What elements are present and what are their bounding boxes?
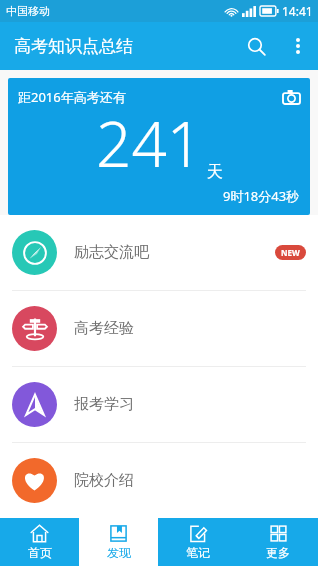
staticText: 笔记 [186, 545, 210, 560]
button[interactable]: 高考经验 [0, 291, 318, 366]
staticText: 发现 [107, 545, 131, 560]
button[interactable]: 笔记 [158, 518, 238, 566]
button[interactable]: Camera [278, 84, 304, 110]
button[interactable]: 励志交流吧 [0, 215, 318, 290]
staticText: 14:41 [282, 3, 313, 19]
staticText: NEW [281, 247, 300, 258]
staticText: 高考经验 [74, 319, 134, 338]
staticText: 中国移动 [6, 4, 50, 18]
staticText: 9时18分43秒 [223, 187, 300, 205]
button[interactable]: More options [278, 26, 318, 66]
button[interactable]: 院校介绍 [0, 443, 318, 518]
button[interactable]: 首页 [0, 518, 79, 566]
button[interactable]: 发现 [79, 518, 158, 566]
staticText: 距2016年高考还有 [18, 88, 126, 106]
staticText: 励志交流吧 [74, 243, 149, 262]
staticText: 院校介绍 [74, 471, 134, 490]
staticText: 更多 [266, 545, 290, 560]
staticText: 报考学习 [74, 395, 134, 414]
staticText: 天 [207, 162, 223, 182]
staticText: 241 [96, 101, 203, 185]
button[interactable]: 报考学习 [0, 367, 318, 442]
staticText: 高考知识点总结 [14, 36, 133, 57]
button[interactable]: 更多 [238, 518, 318, 566]
button[interactable]: Search [234, 24, 278, 68]
staticText: 首页 [28, 545, 52, 560]
button[interactable]: 距2016年高考还有 [8, 78, 310, 215]
